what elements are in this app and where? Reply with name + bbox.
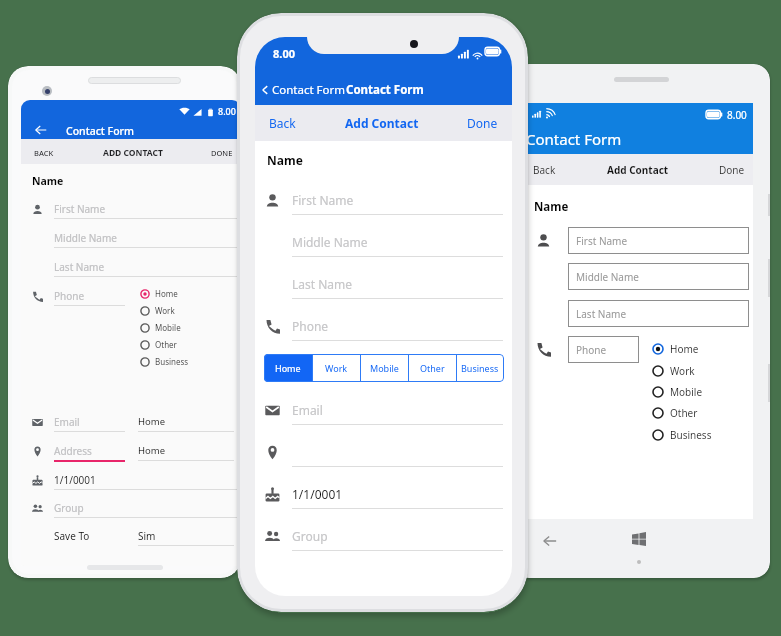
staticText: 1/1/0001: [54, 473, 96, 487]
staticText: Phone: [292, 318, 329, 334]
button[interactable]: Work: [140, 302, 175, 319]
staticText: Contact Form: [526, 129, 622, 149]
button[interactable]: BACK: [34, 148, 54, 158]
staticText: First Name: [292, 192, 354, 208]
staticText: Home: [138, 415, 166, 428]
staticText: Middle Name: [576, 270, 639, 284]
staticText: Contact Form: [66, 124, 134, 138]
staticText: Mobile: [155, 322, 181, 333]
button[interactable]: Other: [140, 336, 177, 353]
staticText: Business: [670, 428, 712, 442]
button[interactable]: Back: [540, 531, 560, 551]
button[interactable]: Mobile: [360, 354, 408, 382]
staticText: Add Contact: [345, 115, 419, 131]
staticText: 8.00: [218, 105, 236, 117]
button[interactable]: First Name: [568, 227, 749, 254]
button[interactable]: Last Name: [568, 300, 749, 327]
button[interactable]: Other: [652, 406, 698, 420]
button[interactable]: Business: [456, 354, 504, 382]
staticText: Name: [534, 199, 569, 215]
staticText: First Name: [54, 202, 106, 216]
staticText: 1/1/0001: [292, 486, 343, 502]
button[interactable]: Back: [269, 115, 296, 131]
staticText: Phone: [54, 289, 85, 303]
staticText: Add Contact: [607, 163, 669, 177]
button[interactable]: Done: [719, 163, 745, 177]
button[interactable]: Done: [467, 115, 498, 131]
button[interactable]: Home: [264, 354, 312, 382]
button[interactable]: DONE: [211, 148, 233, 158]
button[interactable]: Phone: [568, 336, 639, 363]
button[interactable]: Home: [140, 285, 178, 302]
button[interactable]: Business: [652, 428, 712, 442]
staticText: 8.00: [727, 108, 747, 122]
staticText: Home: [275, 362, 301, 374]
button[interactable]: Business: [140, 353, 189, 370]
staticText: Save To: [54, 529, 90, 543]
staticText: ADD CONTACT: [103, 147, 163, 159]
staticText: Address: [54, 444, 92, 458]
staticText: Home: [155, 288, 178, 299]
staticText: Home: [670, 342, 699, 356]
staticText: Name: [267, 152, 303, 168]
staticText: Contact Form: [346, 82, 424, 98]
button[interactable]: Work: [652, 364, 695, 378]
staticText: Home: [138, 444, 166, 457]
staticText: Business: [461, 362, 499, 374]
staticText: Last Name: [576, 307, 627, 321]
staticText: Group: [54, 501, 84, 515]
staticText: First Name: [576, 234, 628, 248]
staticText: Group: [292, 528, 328, 544]
button[interactable]: Contact Form: [258, 82, 346, 98]
staticText: Work: [325, 362, 348, 374]
staticText: Business: [155, 356, 189, 367]
staticText: Contact Form: [272, 82, 346, 98]
button[interactable]: Start: [629, 529, 649, 549]
button[interactable]: Middle Name: [568, 263, 749, 290]
staticText: Email: [54, 415, 80, 429]
staticText: Sim: [138, 529, 156, 543]
button[interactable]: Mobile: [140, 319, 181, 336]
button[interactable]: Home: [652, 342, 699, 356]
staticText: Last Name: [292, 276, 353, 292]
staticText: Other: [420, 362, 445, 374]
staticText: Other: [155, 339, 177, 350]
staticText: Mobile: [670, 385, 703, 399]
button[interactable]: Mobile: [652, 385, 703, 399]
button[interactable]: Back: [33, 122, 48, 137]
staticText: Work: [670, 364, 695, 378]
staticText: Work: [155, 305, 175, 316]
staticText: Last Name: [54, 260, 105, 274]
staticText: Email: [292, 402, 323, 418]
button[interactable]: Work: [312, 354, 360, 382]
staticText: Middle Name: [54, 231, 117, 245]
staticText: Other: [670, 406, 698, 420]
button[interactable]: Back: [533, 163, 556, 177]
staticText: Name: [32, 174, 64, 188]
staticText: Mobile: [370, 362, 399, 374]
staticText: 8.00: [273, 46, 295, 61]
staticText: Middle Name: [292, 234, 368, 250]
button[interactable]: Other: [408, 354, 456, 382]
staticText: Phone: [576, 343, 607, 357]
